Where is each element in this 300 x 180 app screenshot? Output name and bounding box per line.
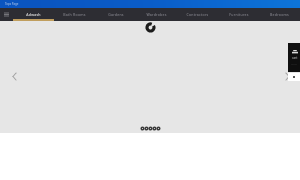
staticText: Adwash bbox=[26, 12, 41, 17]
button[interactable]: Furnitures bbox=[218, 8, 259, 21]
staticText: Gardens bbox=[108, 12, 124, 17]
staticText: Tops Page bbox=[5, 2, 19, 6]
button[interactable] bbox=[149, 127, 152, 130]
staticText: Furnitures bbox=[229, 12, 249, 17]
staticText: Bedrooms bbox=[270, 12, 289, 17]
button[interactable]: Contractors bbox=[177, 8, 218, 21]
button[interactable] bbox=[141, 127, 144, 130]
button[interactable]: Next bbox=[282, 71, 293, 82]
button[interactable] bbox=[145, 127, 148, 130]
staticText: —— bbox=[291, 62, 298, 66]
button[interactable]: Bath Rooms bbox=[54, 8, 95, 21]
button[interactable]: Expand bbox=[288, 73, 300, 81]
staticText: Contractors bbox=[186, 12, 209, 17]
button[interactable]: Menu bbox=[1, 8, 12, 21]
button[interactable]: Cart bbox=[288, 43, 300, 72]
button[interactable] bbox=[153, 127, 156, 130]
button[interactable]: Wardrobes bbox=[136, 8, 177, 21]
button[interactable]: Previous bbox=[9, 71, 20, 82]
button[interactable]: Adwash bbox=[13, 8, 54, 21]
button[interactable]: Gardens bbox=[95, 8, 136, 21]
button[interactable] bbox=[157, 127, 160, 130]
staticText: Bath Rooms bbox=[63, 12, 86, 17]
staticText: cart bbox=[292, 56, 298, 60]
button[interactable]: Bedrooms bbox=[259, 8, 300, 21]
staticText: Wardrobes bbox=[146, 12, 167, 17]
